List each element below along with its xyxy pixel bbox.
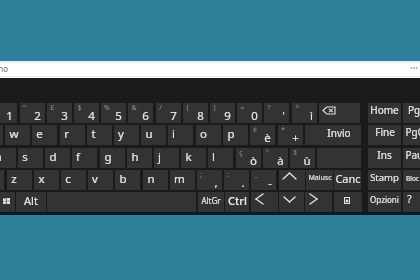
button[interactable]: Home [368,103,401,123]
button[interactable]: Backspace [319,103,360,123]
button[interactable]: Maiusc [306,170,333,190]
button[interactable]: AltGr [198,192,224,212]
button[interactable]: k [181,148,206,168]
button[interactable]: % [101,103,126,123]
button[interactable]: / [156,103,181,123]
staticText: § [293,148,297,158]
button[interactable]: j [154,148,179,168]
staticText: , [214,175,218,191]
button[interactable]: Bloc [403,170,420,190]
staticText: h [131,149,139,165]
button[interactable]: g [100,148,125,168]
button[interactable]: m [170,170,195,190]
staticText: = [240,103,245,113]
button[interactable]: a [0,148,16,168]
button[interactable]: o [196,125,221,145]
button[interactable]: é [250,125,275,145]
button[interactable]: Stamp [368,170,401,190]
button[interactable]: Alt [16,192,46,212]
button[interactable]: ç [236,148,261,168]
staticText: + [292,130,299,146]
staticText: l [212,149,215,165]
button[interactable]: l [208,148,233,168]
staticText: t [91,126,96,142]
button[interactable]: Left [251,192,278,212]
button[interactable]: * [278,125,303,145]
button[interactable]: \ [0,103,17,123]
staticText: u [145,126,153,142]
button[interactable]: z [7,170,32,190]
button[interactable]: ? [264,103,289,123]
button[interactable]: Right [305,192,332,212]
button[interactable]: Canc [334,170,361,190]
button[interactable]: § [290,148,315,168]
staticText: / [159,103,162,113]
button[interactable]: Layout [334,192,362,212]
staticText: % [104,103,110,113]
button[interactable]: t [87,125,112,145]
staticText: Fine [375,125,395,139]
button[interactable]: : [224,170,249,190]
staticText: j [158,149,161,165]
staticText: . [241,175,245,191]
button[interactable]: = [237,103,262,123]
button[interactable]: Ins [368,148,401,168]
button[interactable]: e [32,125,57,145]
button[interactable]: Ctrl [225,192,249,212]
button[interactable]: x [34,170,59,190]
staticText: s [22,149,28,165]
button[interactable]: r [60,125,85,145]
staticText: 1 [6,108,13,124]
button[interactable]: b [115,170,140,190]
button[interactable]: c [61,170,86,190]
button[interactable]: Down [279,192,304,212]
button[interactable]: p [223,125,248,145]
staticText: & [131,103,137,113]
button[interactable]: Fine [368,125,401,145]
button[interactable]: ) [210,103,235,123]
button[interactable]: Windows [0,192,15,212]
button[interactable]: _ [251,170,276,190]
staticText: 9 [224,108,231,124]
staticText: Invio [327,126,351,140]
button[interactable]: Opzioni [368,192,401,212]
button[interactable]: d [45,148,70,168]
button[interactable]: f [72,148,97,168]
staticText: w [9,126,19,142]
staticText: p [227,126,235,142]
staticText: Ins [377,148,392,162]
staticText: d [49,149,57,165]
staticText: ç [239,148,243,158]
button[interactable]: i [168,125,193,145]
staticText: " [23,103,26,113]
button[interactable]: Pausa [403,148,420,168]
button[interactable]: & [128,103,153,123]
button[interactable]: $ [74,103,99,123]
button[interactable]: PgGiù [403,125,420,145]
button[interactable]: Up [279,170,305,190]
staticText: c [65,171,71,187]
button[interactable]: y [114,125,139,145]
button[interactable]: rno [0,61,420,78]
button[interactable]: ; [197,170,222,190]
button[interactable]: v [88,170,113,190]
button[interactable]: ° [263,148,288,168]
button[interactable]: w [5,125,30,145]
button[interactable]: " [20,103,45,123]
button[interactable]: ^ [292,103,317,123]
button[interactable]: Invio [305,125,361,145]
button[interactable]: s [18,148,43,168]
button[interactable]: £ [47,103,72,123]
staticText: r [64,126,69,142]
button[interactable]: ( [183,103,208,123]
button[interactable]: n [143,170,168,190]
button[interactable]: h [127,148,152,168]
button[interactable]: PgSù [403,103,420,123]
staticText: ' [282,108,285,124]
button[interactable]: u [141,125,166,145]
button[interactable]: ? [403,192,420,212]
